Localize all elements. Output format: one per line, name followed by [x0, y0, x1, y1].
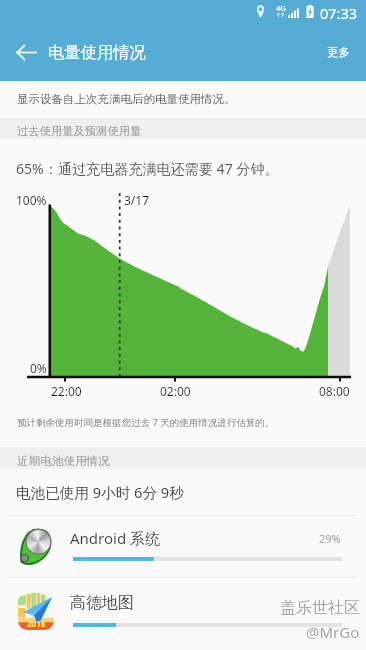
staticText: 过去使用量及预测使用量 [17, 124, 142, 138]
staticText: 22:00 [51, 383, 82, 399]
staticText: 近期电池使用情况 [17, 454, 110, 469]
staticText: 3/17 [124, 192, 150, 208]
staticText: 02:00 [160, 383, 191, 399]
staticText: 高德地图 [70, 593, 134, 613]
button[interactable]: 2018 [0, 579, 366, 644]
staticText: 显示设备自上次充满电后的电量使用情况。 [17, 92, 236, 106]
staticText: 65%：通过充电器充满电还需要 47 分钟。 [16, 159, 279, 178]
staticText: 08:00 [319, 383, 350, 399]
button[interactable]: 更多 [311, 33, 366, 71]
staticText: 4G [276, 3, 286, 13]
staticText: 07:33 [320, 3, 358, 23]
button[interactable]: Back [0, 26, 52, 78]
staticText: 29% [319, 531, 341, 546]
staticText: Android 系统 [70, 528, 161, 548]
staticText: 盖乐世社区 [280, 598, 360, 618]
staticText: 2018 [27, 618, 46, 629]
staticText: 更多 [327, 45, 350, 59]
staticText: @MrGo [306, 622, 360, 642]
staticText: 0% [30, 360, 47, 376]
button[interactable]: Android 系统 [0, 513, 366, 578]
staticText: 电量使用情况 [48, 42, 146, 63]
staticText: 预计剩余使用时间是根据您过去 7 天的使用情况进行估算的。 [17, 416, 275, 429]
staticText: 电池已使用 9小时 6分 9秒 [16, 482, 184, 502]
staticText: 100% [16, 192, 47, 208]
